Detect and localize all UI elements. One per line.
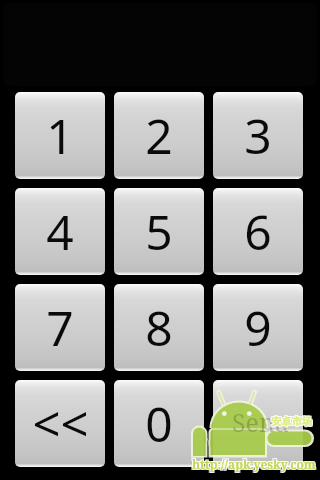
staticText: http://apk.yesky.com (192, 455, 316, 471)
staticText: http://apk.yesky.com (192, 457, 316, 473)
staticText: http://apk.yesky.com (193, 456, 317, 472)
staticText: 3 (244, 103, 272, 168)
staticText: 安卓市场 (272, 416, 313, 429)
button[interactable]: 2 (114, 92, 204, 179)
button[interactable]: 5 (114, 188, 204, 275)
staticText: 安卓市场 (271, 415, 312, 428)
staticText: << (32, 390, 89, 457)
button[interactable]: 9 (213, 284, 303, 371)
staticText: 9 (244, 295, 272, 360)
staticText: http://apk.yesky.com (191, 457, 315, 473)
button[interactable]: 7 (15, 284, 105, 371)
staticText: 安卓市场 (270, 415, 311, 428)
staticText: 1 (46, 103, 74, 168)
staticText: Sena (232, 405, 290, 439)
staticText: 2 (145, 103, 173, 168)
staticText: http://apk.yesky.com (192, 456, 316, 472)
staticText: 5 (145, 199, 173, 264)
staticText: 7 (46, 295, 74, 360)
button[interactable]: 0 (114, 380, 204, 467)
staticText: 安卓市场 (270, 414, 311, 427)
button[interactable]: 1 (15, 92, 105, 179)
staticText: http://apk.yesky.com (191, 456, 315, 472)
staticText: 8 (145, 295, 173, 360)
button[interactable]: Enter (213, 380, 303, 467)
staticText: 安卓市场 (271, 416, 312, 429)
button[interactable]: 8 (114, 284, 204, 371)
staticText: 安卓市场 (272, 415, 313, 428)
staticText: http://apk.yesky.com (193, 457, 317, 473)
button[interactable]: 6 (213, 188, 303, 275)
staticText: http://apk.yesky.com (191, 455, 315, 471)
staticText: 安卓市场 (271, 414, 312, 427)
staticText: 安卓市场 (272, 414, 313, 427)
staticText: 4 (46, 199, 74, 264)
button[interactable]: Backspace (15, 380, 105, 467)
staticText: 安卓市场 (270, 416, 311, 429)
staticText: 0 (145, 391, 173, 456)
staticText: http://apk.yesky.com (193, 455, 317, 471)
button[interactable]: 4 (15, 188, 105, 275)
button[interactable]: 3 (213, 92, 303, 179)
staticText: 6 (244, 199, 272, 264)
